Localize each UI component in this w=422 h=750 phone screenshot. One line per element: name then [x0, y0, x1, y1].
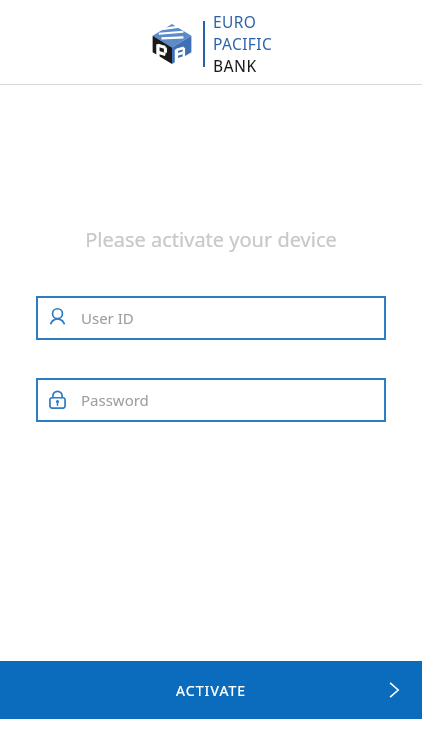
staticText: EURO — [213, 11, 257, 32]
staticText: PACIFIC — [213, 33, 273, 54]
staticText: Please activate your device — [0, 226, 422, 253]
staticText: User ID — [81, 308, 134, 328]
button[interactable]: ACTIVATE — [0, 661, 422, 719]
staticText: ACTIVATE — [176, 681, 247, 700]
staticText: BANK — [213, 55, 257, 76]
button[interactable]: Password — [36, 378, 386, 422]
staticText: Password — [81, 390, 149, 410]
button[interactable]: User ID — [36, 296, 386, 340]
